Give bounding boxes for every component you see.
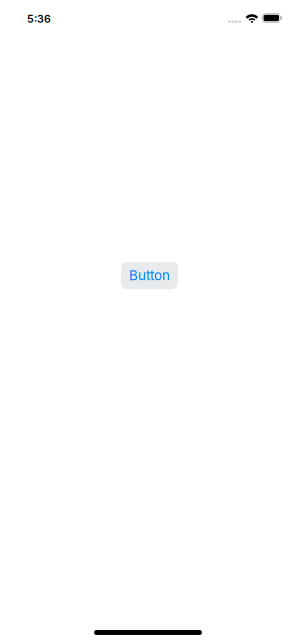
staticText: Button	[129, 267, 170, 283]
button[interactable]: Button	[121, 262, 178, 289]
staticText: 5:36	[27, 12, 51, 25]
